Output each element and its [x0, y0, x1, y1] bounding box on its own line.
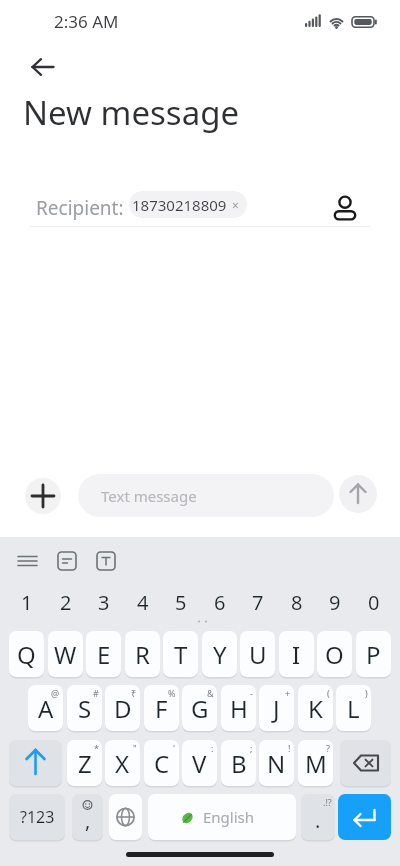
button[interactable]: @: [28, 685, 63, 731]
staticText: 9: [329, 589, 341, 613]
button[interactable]: %: [144, 685, 179, 731]
button[interactable]: +: [259, 685, 294, 731]
button[interactable]: English: [148, 794, 296, 840]
staticText: .!?: [323, 796, 332, 808]
button[interactable]: 18730218809: [129, 191, 247, 218]
button[interactable]: U: [240, 631, 275, 677]
button[interactable]: &: [182, 685, 217, 731]
button[interactable]: 9: [317, 589, 352, 613]
button[interactable]: !: [259, 740, 294, 786]
staticText: P: [366, 638, 381, 671]
button[interactable]: ?123: [9, 794, 65, 840]
staticText: 4: [137, 589, 149, 613]
staticText: #: [93, 687, 99, 699]
button[interactable]: T: [163, 631, 198, 677]
button[interactable]: [340, 740, 391, 786]
button[interactable]: [52, 546, 82, 576]
staticText: Q: [17, 638, 36, 671]
staticText: ;: [250, 742, 253, 754]
button[interactable]: 0: [356, 589, 391, 613]
staticText: G: [191, 692, 209, 725]
staticText: @: [51, 687, 60, 699]
staticText: &: [207, 687, 214, 699]
button[interactable]: O: [317, 631, 352, 677]
button[interactable]: Text message: [78, 474, 334, 517]
staticText: 18730218809: [132, 195, 227, 215]
staticText: K: [308, 692, 323, 725]
button[interactable]: Y: [202, 631, 237, 677]
staticText: Y: [213, 638, 227, 671]
button[interactable]: ': [144, 740, 179, 786]
staticText: English: [203, 807, 255, 827]
staticText: 8: [291, 589, 303, 613]
button[interactable]: E: [86, 631, 121, 677]
button[interactable]: (: [298, 685, 333, 731]
staticText: (: [327, 687, 330, 699]
button[interactable]: 3: [86, 589, 121, 613]
staticText: N: [267, 747, 286, 780]
button[interactable]: ,: [72, 794, 103, 840]
button[interactable]: #: [67, 685, 102, 731]
staticText: 7: [252, 589, 264, 613]
staticText: 2:36 AM: [54, 10, 119, 33]
staticText: W: [54, 638, 77, 671]
staticText: M: [305, 747, 327, 780]
button[interactable]: [12, 546, 42, 576]
button[interactable]: [338, 794, 391, 840]
staticText: %: [168, 687, 176, 699]
staticText: T: [174, 638, 188, 671]
button[interactable]: [339, 475, 377, 513]
button[interactable]: ": [105, 740, 140, 786]
staticText: 3: [98, 589, 110, 613]
button[interactable]: I: [279, 631, 314, 677]
button[interactable]: R: [125, 631, 160, 677]
staticText: ×: [232, 197, 239, 213]
button[interactable]: 5: [163, 589, 198, 613]
staticText: O: [325, 638, 344, 671]
staticText: C: [154, 747, 170, 780]
button[interactable]: [25, 478, 61, 514]
staticText: Z: [78, 747, 92, 780]
button[interactable]: ): [336, 685, 371, 731]
button[interactable]: -: [221, 685, 256, 731]
staticText: X: [115, 747, 130, 780]
staticText: R: [135, 638, 150, 671]
button[interactable]: 8: [279, 589, 314, 613]
staticText: 2: [60, 589, 72, 613]
button[interactable]: ?: [298, 740, 333, 786]
button[interactable]: [22, 50, 62, 84]
button[interactable]: P: [356, 631, 391, 677]
staticText: I: [292, 638, 301, 671]
staticText: 1: [21, 589, 33, 613]
staticText: A: [38, 692, 54, 725]
button[interactable]: *: [67, 740, 102, 786]
staticText: Recipient:: [36, 195, 124, 221]
button[interactable]: 7: [240, 589, 275, 613]
button[interactable]: ₹: [105, 685, 140, 731]
button[interactable]: ;: [221, 740, 256, 786]
button[interactable]: 4: [125, 589, 160, 613]
button[interactable]: [328, 190, 360, 222]
button[interactable]: .!?: [301, 794, 335, 840]
button[interactable]: 2: [48, 589, 83, 613]
staticText: +: [285, 687, 291, 699]
staticText: E: [97, 638, 111, 671]
staticText: ": [133, 742, 137, 754]
staticText: !: [288, 742, 291, 754]
staticText: -: [250, 687, 253, 699]
button[interactable]: 6: [202, 589, 237, 613]
staticText: F: [155, 692, 168, 725]
button[interactable]: 1: [9, 589, 44, 613]
staticText: 5: [175, 589, 187, 613]
button[interactable]: [91, 546, 121, 576]
button[interactable]: W: [48, 631, 83, 677]
staticText: ,: [85, 807, 91, 834]
staticText: J: [273, 692, 280, 725]
button[interactable]: [109, 794, 142, 840]
staticText: ₹: [131, 687, 137, 699]
staticText: .: [315, 807, 321, 834]
button[interactable]: [9, 740, 62, 786]
staticText: L: [347, 692, 360, 725]
button[interactable]: :: [182, 740, 217, 786]
button[interactable]: Q: [9, 631, 44, 677]
